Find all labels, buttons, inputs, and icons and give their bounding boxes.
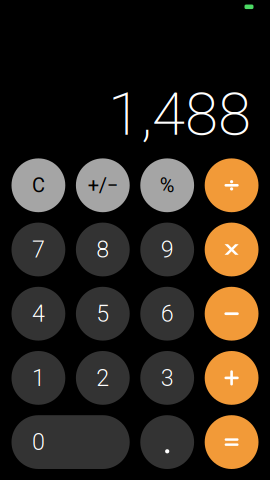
staticText: 8 [96, 236, 109, 263]
button[interactable]: Multiply [205, 223, 258, 276]
button[interactable]: +/− [76, 158, 130, 212]
button[interactable]: 6 [140, 287, 194, 341]
button[interactable]: 3 [140, 351, 194, 405]
button[interactable]: 2 [76, 351, 130, 405]
button[interactable]: Subtract [205, 287, 258, 341]
staticText: 4 [32, 300, 45, 327]
staticText: 9 [161, 236, 174, 263]
staticText: 0 [32, 428, 45, 456]
button[interactable]: 1 [11, 351, 65, 405]
button[interactable]: Equals [205, 415, 258, 469]
button[interactable]: C [11, 158, 65, 212]
staticText: 7 [32, 236, 45, 263]
staticText: +/− [88, 174, 118, 197]
staticText: 3 [161, 364, 174, 391]
button[interactable]: 7 [11, 223, 65, 276]
staticText: 1,488 [108, 79, 251, 149]
staticText: 5 [96, 300, 109, 327]
button[interactable]: Add [205, 351, 258, 405]
button[interactable]: 5 [76, 287, 130, 341]
button[interactable]: Decimal point [140, 415, 194, 469]
button[interactable]: 4 [11, 287, 65, 341]
staticText: C [32, 174, 45, 197]
button[interactable]: 9 [140, 223, 194, 276]
staticText: 2 [96, 364, 109, 391]
staticText: % [160, 174, 175, 197]
button[interactable]: Divide [205, 158, 258, 212]
staticText: 6 [161, 300, 174, 327]
button[interactable]: 8 [76, 223, 130, 276]
button[interactable]: 0 [11, 415, 130, 469]
button[interactable]: % [140, 158, 194, 212]
staticText: 1 [32, 364, 45, 391]
